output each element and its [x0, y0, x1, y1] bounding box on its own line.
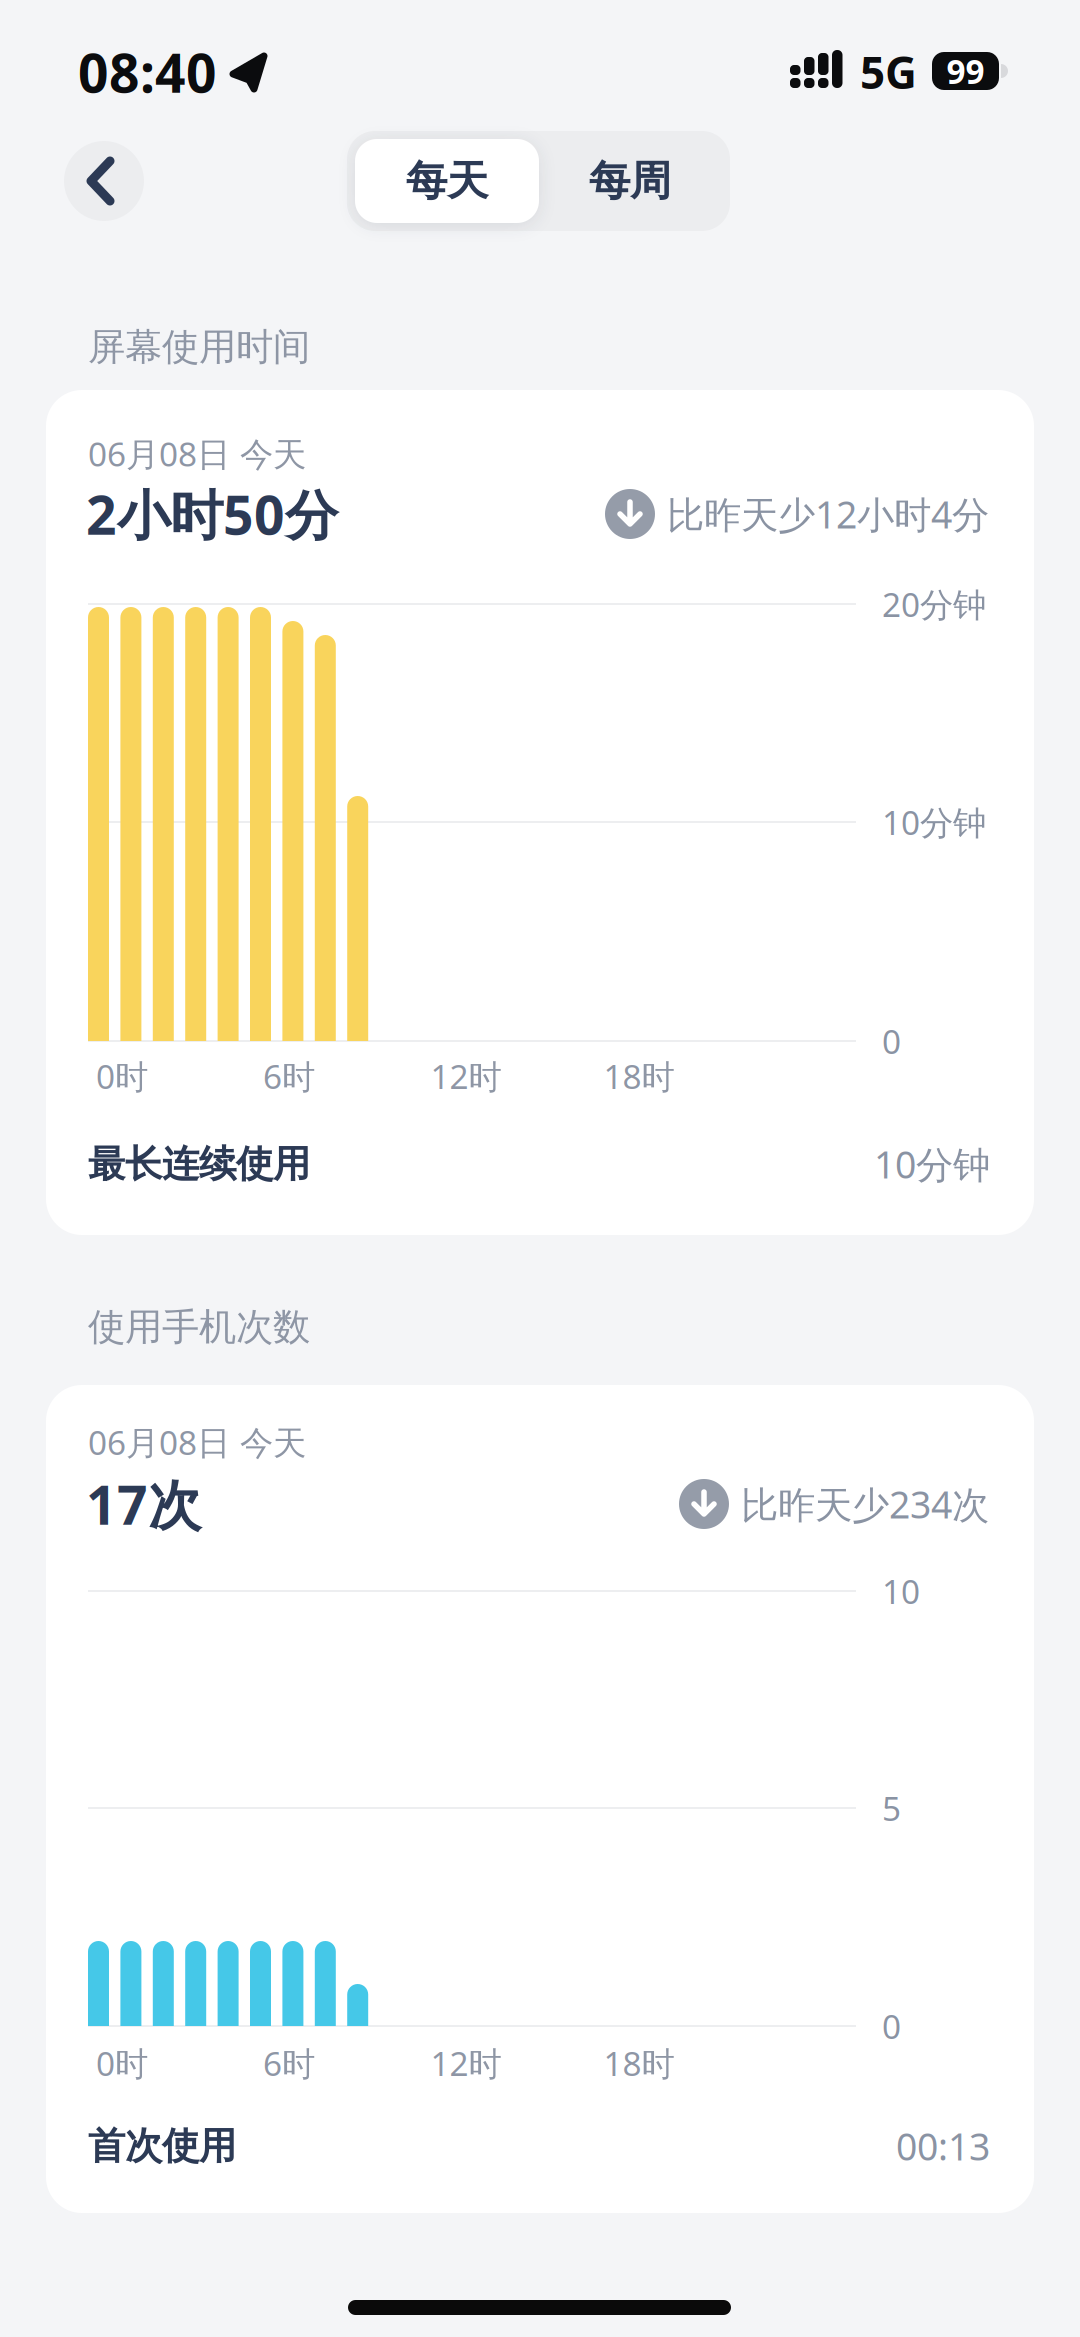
staticText: 每天 [406, 156, 488, 206]
staticText: 0 [882, 2004, 901, 2048]
staticText: 0时 [96, 1054, 148, 1098]
button[interactable]: 每天 [355, 139, 539, 223]
button[interactable]: Back [64, 141, 144, 221]
staticText: 18时 [603, 2041, 674, 2085]
staticText: 首次使用 [88, 2123, 236, 2169]
staticText: 12时 [430, 1054, 501, 1098]
staticText: 10 [882, 1569, 920, 1613]
staticText: 6时 [263, 1054, 315, 1098]
staticText: 每周 [589, 156, 671, 206]
staticText: 10分钟 [874, 1139, 990, 1189]
staticText: 0时 [96, 2041, 148, 2085]
staticText: 5G [860, 43, 917, 101]
staticText: 08:40 [78, 37, 217, 107]
staticText: 06月08日 今天 [88, 1420, 306, 1464]
staticText: 18时 [603, 1054, 674, 1098]
staticText: 06月08日 今天 [88, 431, 306, 476]
staticText: 00:13 [896, 2121, 990, 2171]
staticText: 99 [946, 49, 984, 93]
staticText: 10分钟 [882, 800, 986, 844]
staticText: 比昨天少234次 [741, 1479, 989, 1529]
button[interactable]: 每周 [538, 139, 722, 223]
staticText: 最长连续使用 [88, 1141, 310, 1187]
staticText: 屏幕使用时间 [88, 324, 310, 370]
staticText: 使用手机次数 [88, 1304, 310, 1350]
staticText: 2小时50分 [86, 479, 338, 549]
staticText: 6时 [263, 2041, 315, 2085]
staticText: 5 [882, 1786, 901, 1830]
staticText: 比昨天少12小时4分 [667, 489, 989, 539]
staticText: 12时 [430, 2041, 501, 2085]
staticText: 20分钟 [882, 582, 986, 626]
staticText: 17次 [86, 1469, 201, 1539]
staticText: 0 [882, 1019, 901, 1063]
